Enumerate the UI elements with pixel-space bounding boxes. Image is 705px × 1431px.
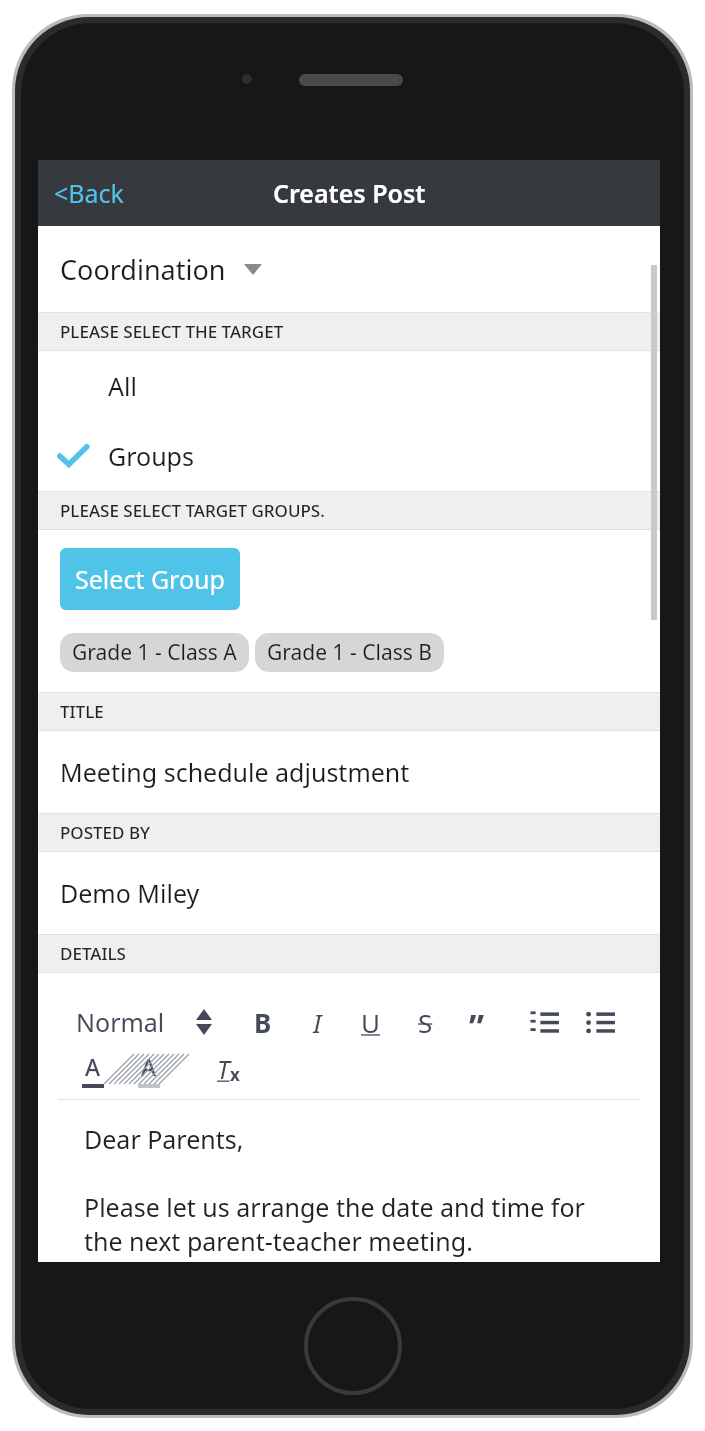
staticText: Coordination <box>60 251 226 288</box>
button[interactable]: Normal <box>76 1005 169 1039</box>
staticText: All <box>108 369 137 403</box>
button[interactable]: Underline <box>355 1003 387 1041</box>
button[interactable]: Numbered list <box>527 1003 561 1041</box>
button[interactable]: Grade 1 - Class B <box>255 633 444 672</box>
staticText: S <box>418 1005 433 1040</box>
button[interactable]: Text color <box>76 1049 110 1089</box>
staticText: TITLE <box>60 700 104 723</box>
button[interactable]: Clear formatting <box>208 1049 248 1089</box>
staticText: B <box>254 1005 272 1040</box>
staticText: Select Group <box>75 562 225 596</box>
button[interactable]: Font size <box>191 1004 217 1040</box>
button[interactable]: All <box>38 351 660 421</box>
staticText: ” <box>469 1003 485 1041</box>
button[interactable]: Selected <box>38 421 660 491</box>
button[interactable]: <Back <box>38 168 140 218</box>
button[interactable]: Strikethrough <box>409 1003 441 1041</box>
staticText: Groups <box>108 439 194 473</box>
staticText: A <box>85 1051 101 1082</box>
staticText: DETAILS <box>60 942 126 965</box>
staticText: A <box>141 1051 157 1082</box>
staticText: PLEASE SELECT THE TARGET <box>60 320 284 343</box>
staticText: <Back <box>54 176 124 210</box>
staticText: T <box>217 1052 230 1086</box>
staticText: Meeting schedule adjustment <box>60 755 410 789</box>
staticText: Creates Post <box>273 176 426 210</box>
button[interactable]: Blockquote <box>461 1003 493 1041</box>
staticText: Grade 1 - Class A <box>72 638 237 667</box>
button[interactable]: Grade 1 - Class A <box>60 633 249 672</box>
button[interactable]: Bulleted list <box>583 1003 617 1041</box>
staticText: U <box>361 1005 381 1040</box>
staticText: Dear Parents, <box>84 1122 244 1156</box>
other: Selected <box>58 445 88 467</box>
button[interactable]: Italic <box>301 1003 333 1041</box>
staticText: Normal <box>76 1005 165 1039</box>
button[interactable]: Select Group <box>60 548 240 610</box>
staticText: I <box>313 1005 322 1040</box>
staticText: x <box>230 1063 240 1086</box>
staticText: Please let us arrange the date and time … <box>84 1190 620 1258</box>
staticText: Demo Miley <box>60 876 200 910</box>
staticText: Grade 1 - Class B <box>267 638 432 667</box>
staticText: PLEASE SELECT TARGET GROUPS. <box>60 499 325 522</box>
button[interactable]: Background color <box>132 1049 166 1089</box>
button[interactable]: Bold <box>247 1003 279 1041</box>
button[interactable]: Coordination <box>38 226 660 312</box>
staticText: POSTED BY <box>60 821 150 844</box>
